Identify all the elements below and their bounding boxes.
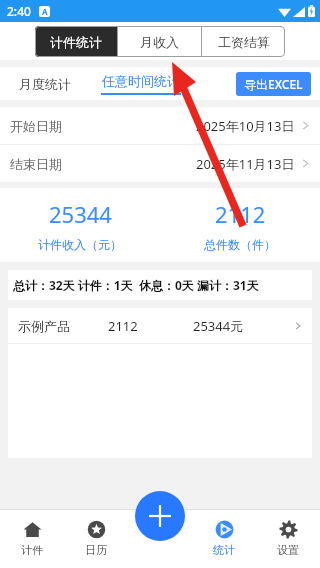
staticText: 2112: [215, 199, 266, 229]
button[interactable]: 开始日期: [0, 107, 320, 144]
button[interactable]: 日历: [64, 509, 128, 568]
staticText: 任意时间统计: [102, 73, 180, 89]
button[interactable]: Add: [135, 491, 185, 541]
staticText: 25344元: [193, 317, 294, 335]
staticText: 开始日期: [10, 118, 62, 134]
staticText: 日历: [85, 543, 107, 557]
staticText: 设置: [277, 543, 299, 557]
button[interactable]: 2112: [160, 199, 320, 252]
button[interactable]: 总计：32天 计件：1天 休息：0天 漏计：31天: [8, 270, 312, 300]
staticText: A: [42, 6, 48, 17]
button[interactable]: 计件: [0, 509, 64, 568]
staticText: 总件数（件）: [204, 237, 276, 252]
button[interactable]: 25344: [0, 199, 160, 252]
button[interactable]: 月度统计: [19, 76, 71, 92]
staticText: 计件统计: [50, 34, 102, 50]
staticText: 导出EXCEL: [244, 76, 303, 92]
staticText: 2112: [108, 317, 193, 335]
button[interactable]: 设置: [256, 509, 320, 568]
staticText: 工资结算: [218, 34, 270, 50]
staticText: 示例产品: [18, 318, 108, 334]
staticText: 总计：32天 计件：1天 休息：0天 漏计：31天: [13, 277, 259, 293]
staticText: 结束日期: [10, 156, 62, 172]
staticText: 2:40: [7, 3, 31, 19]
button[interactable]: 结束日期: [0, 145, 320, 182]
staticText: 统计: [213, 543, 235, 557]
button[interactable]: 任意时间统计: [101, 73, 181, 95]
staticText: 月收入: [140, 34, 179, 50]
staticText: 25344: [49, 199, 112, 229]
button[interactable]: 工资结算: [202, 26, 285, 57]
button[interactable]: 月收入: [118, 26, 201, 57]
button[interactable]: 统计: [192, 509, 256, 568]
staticText: 2025年11月13日: [196, 155, 295, 173]
button[interactable]: 导出EXCEL: [236, 72, 311, 96]
staticText: 2025年10月13日: [196, 117, 295, 135]
staticText: 月度统计: [19, 76, 71, 92]
staticText: 计件收入（元）: [38, 237, 122, 252]
staticText: 计件: [21, 543, 43, 557]
button[interactable]: 计件统计: [35, 26, 117, 57]
button[interactable]: 示例产品: [8, 308, 312, 343]
